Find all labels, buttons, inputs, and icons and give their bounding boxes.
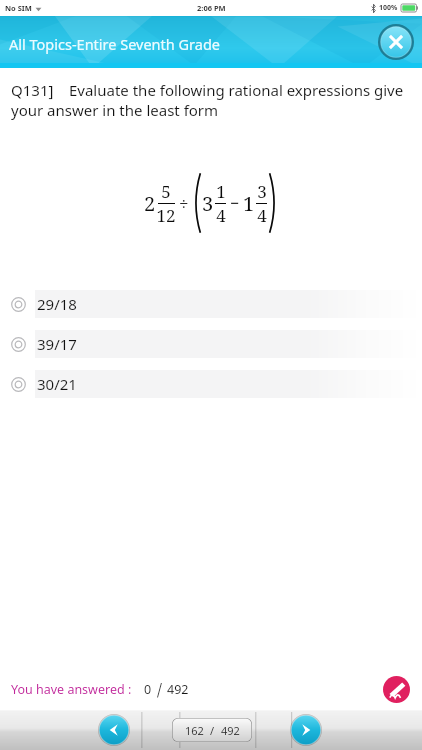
staticText: 2:06 PM [197, 3, 226, 13]
button[interactable]: Close [378, 24, 414, 60]
staticText: 162 [185, 723, 204, 738]
staticText: 4 [257, 204, 267, 227]
staticText: 5 [161, 180, 171, 203]
button[interactable]: Notes [383, 676, 410, 703]
staticText: 100% [379, 3, 398, 13]
staticText: 1 [216, 180, 226, 203]
staticText: 29/18 [37, 294, 77, 314]
staticText: ÷ [179, 192, 189, 215]
staticText: 39/17 [37, 334, 77, 354]
staticText: No SIM [5, 3, 32, 13]
staticText: 4 [216, 204, 226, 227]
staticText: 0 [144, 681, 152, 698]
staticText: 492 [167, 681, 189, 698]
button[interactable]: 30/21 [0, 370, 422, 398]
staticText: 492 [221, 723, 240, 738]
staticText: / [210, 723, 215, 738]
staticText: Q131] Evaluate the following rational ex… [11, 80, 418, 120]
button[interactable]: Previous [98, 714, 130, 746]
button[interactable]: 29/18 [0, 290, 422, 318]
staticText: You have answered : [11, 681, 132, 698]
button[interactable]: 39/17 [0, 330, 422, 358]
staticText: / [157, 678, 162, 701]
staticText: 3 [257, 180, 267, 203]
staticText: 1 [243, 190, 255, 217]
staticText: 12 [156, 204, 176, 227]
staticText: 2 [144, 190, 156, 217]
staticText: All Topics-Entire Seventh Grade [9, 34, 221, 54]
button[interactable]: Next [290, 714, 322, 746]
staticText: 30/21 [37, 374, 77, 394]
staticText: − [230, 192, 240, 214]
button[interactable]: 162 [172, 718, 252, 742]
staticText: 3 [202, 190, 214, 217]
